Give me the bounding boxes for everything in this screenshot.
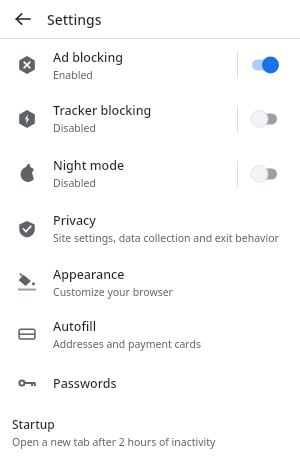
staticText: Disabled [53, 176, 96, 190]
staticText: Appearance [53, 266, 125, 283]
button[interactable]: Startup [0, 412, 300, 455]
staticText: Customize your browser [53, 285, 173, 299]
button[interactable]: Toggle on [252, 51, 286, 79]
button[interactable]: Autofill [0, 308, 300, 360]
button[interactable]: Toggle off [252, 160, 286, 188]
staticText: Enabled [53, 68, 93, 82]
staticText: Startup [12, 416, 55, 432]
button[interactable]: Tracker blocking [0, 91, 300, 146]
button[interactable]: Back [8, 4, 38, 34]
staticText: Autofill [53, 318, 97, 335]
staticText: Disabled [53, 121, 96, 135]
button[interactable]: Ad blocking [0, 39, 300, 91]
staticText: Addresses and payment cards [53, 337, 201, 351]
button[interactable]: Passwords [0, 360, 300, 406]
staticText: Passwords [53, 375, 117, 392]
staticText: Site settings, data collection and exit … [53, 231, 279, 245]
staticText: Open a new tab after 2 hours of inactivi… [12, 435, 216, 449]
button[interactable]: Privacy [0, 201, 300, 256]
staticText: Ad blocking [53, 49, 124, 66]
staticText: Privacy [53, 212, 96, 229]
staticText: Tracker blocking [53, 102, 152, 119]
button[interactable]: Toggle off [252, 105, 286, 133]
button[interactable]: Appearance [0, 256, 300, 308]
button[interactable]: Night mode [0, 146, 300, 201]
staticText: Settings [47, 10, 102, 29]
staticText: Night mode [53, 157, 125, 174]
